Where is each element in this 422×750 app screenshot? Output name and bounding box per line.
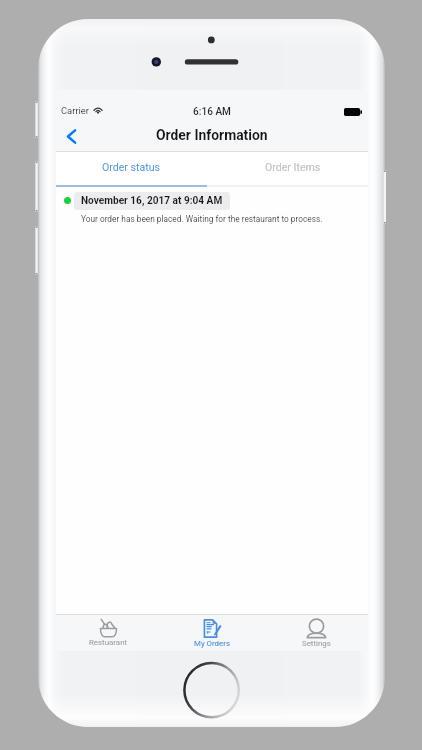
staticText: November 16, 2017 at 9:04 AM: [81, 195, 223, 207]
button[interactable]: November 16, 2017 at 9:04 AM: [56, 187, 368, 229]
button[interactable]: Order Items: [217, 152, 368, 182]
button[interactable]: Settings: [264, 615, 368, 651]
button[interactable]: Order status: [56, 152, 206, 182]
staticText: 6:16 AM: [193, 106, 231, 118]
staticText: Order Items: [265, 161, 321, 173]
staticText: Settings: [302, 639, 331, 648]
staticText: Order status: [102, 161, 161, 173]
staticText: Restuarant: [89, 638, 128, 647]
button[interactable]: Restuarant: [56, 615, 160, 651]
button[interactable]: My Orders: [160, 615, 264, 651]
button[interactable]: Back: [64, 128, 79, 145]
staticText: Carrier: [61, 105, 90, 116]
staticText: My Orders: [194, 639, 230, 648]
staticText: Your order has been placed. Waiting for …: [81, 214, 323, 224]
staticText: Order Information: [156, 127, 268, 143]
